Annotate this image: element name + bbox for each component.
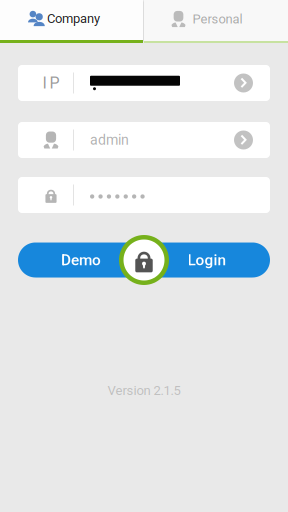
- staticText: admin: [90, 132, 129, 148]
- staticText: Version 2.1.5: [107, 383, 180, 398]
- button[interactable]: Company: [0, 0, 143, 43]
- button[interactable]: I P: [18, 65, 270, 101]
- staticText: Personal: [192, 11, 242, 27]
- button[interactable]: Secure login: [119, 235, 169, 285]
- button[interactable]: Demo: [18, 242, 144, 277]
- staticText: Company: [47, 11, 100, 26]
- staticText: Login: [187, 251, 226, 269]
- button[interactable]: admin: [18, 122, 270, 158]
- staticText: I P: [42, 74, 59, 92]
- staticText: Demo: [61, 251, 101, 269]
- button[interactable]: Login: [144, 242, 270, 277]
- button[interactable]: [18, 177, 270, 213]
- button[interactable]: Personal: [144, 0, 288, 43]
